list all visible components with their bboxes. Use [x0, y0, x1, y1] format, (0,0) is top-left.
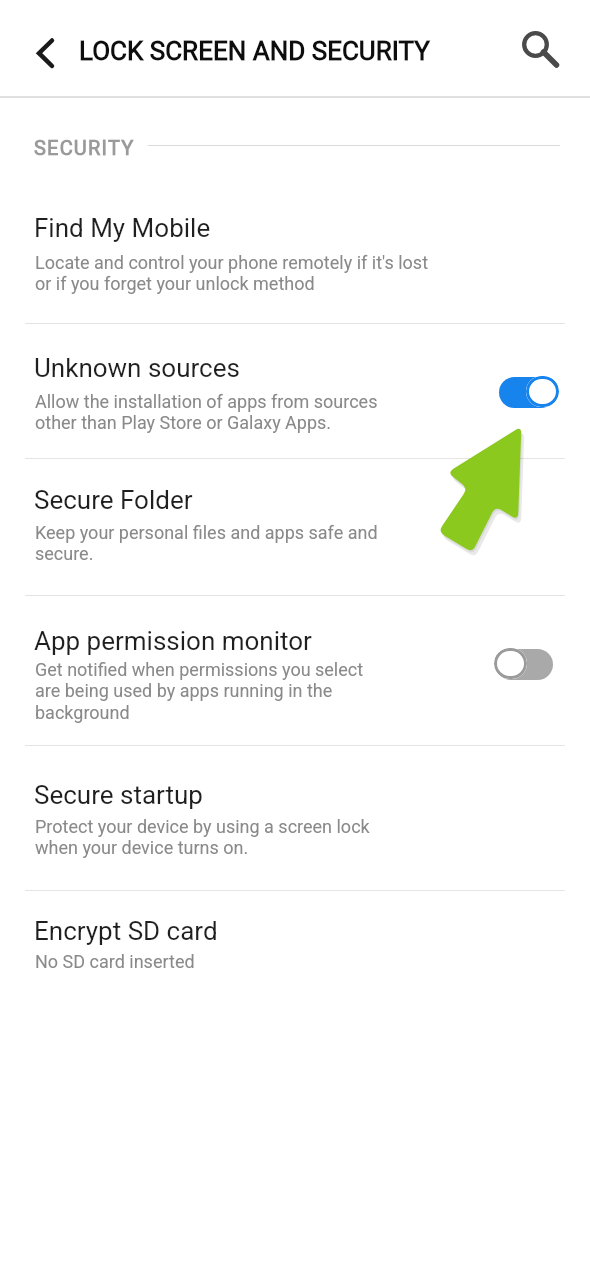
staticText: Allow the installation of apps from sour…	[35, 391, 378, 434]
staticText: LOCK SCREEN AND SECURITY	[79, 36, 430, 66]
button[interactable]: Secure Folder	[0, 459, 590, 595]
staticText: App permission monitor	[34, 626, 312, 656]
button[interactable]	[0, 0, 70, 96]
staticText: Encrypt SD card	[34, 916, 218, 946]
staticText: SECURITY	[34, 136, 135, 159]
staticText: Find My Mobile	[34, 213, 211, 243]
staticText: Secure startup	[34, 780, 203, 810]
button[interactable]	[505, 14, 567, 76]
button[interactable]: Find My Mobile	[0, 97, 590, 323]
button[interactable]: App permission monitor	[0, 596, 590, 745]
staticText: No SD card inserted	[35, 951, 195, 972]
staticText: Locate and control your phone remotely i…	[35, 252, 429, 295]
button[interactable]: Encrypt SD card	[0, 891, 590, 1001]
button[interactable]	[499, 377, 556, 408]
staticText: Keep your personal files and apps safe a…	[35, 522, 378, 565]
button[interactable]: Secure startup	[0, 746, 590, 890]
button[interactable]	[496, 649, 553, 680]
staticText: Protect your device by using a screen lo…	[35, 816, 370, 859]
staticText: Get notified when permissions you select…	[35, 659, 364, 724]
staticText: Unknown sources	[34, 353, 240, 383]
staticText: Secure Folder	[34, 485, 193, 515]
button[interactable]: Unknown sources	[0, 324, 590, 458]
